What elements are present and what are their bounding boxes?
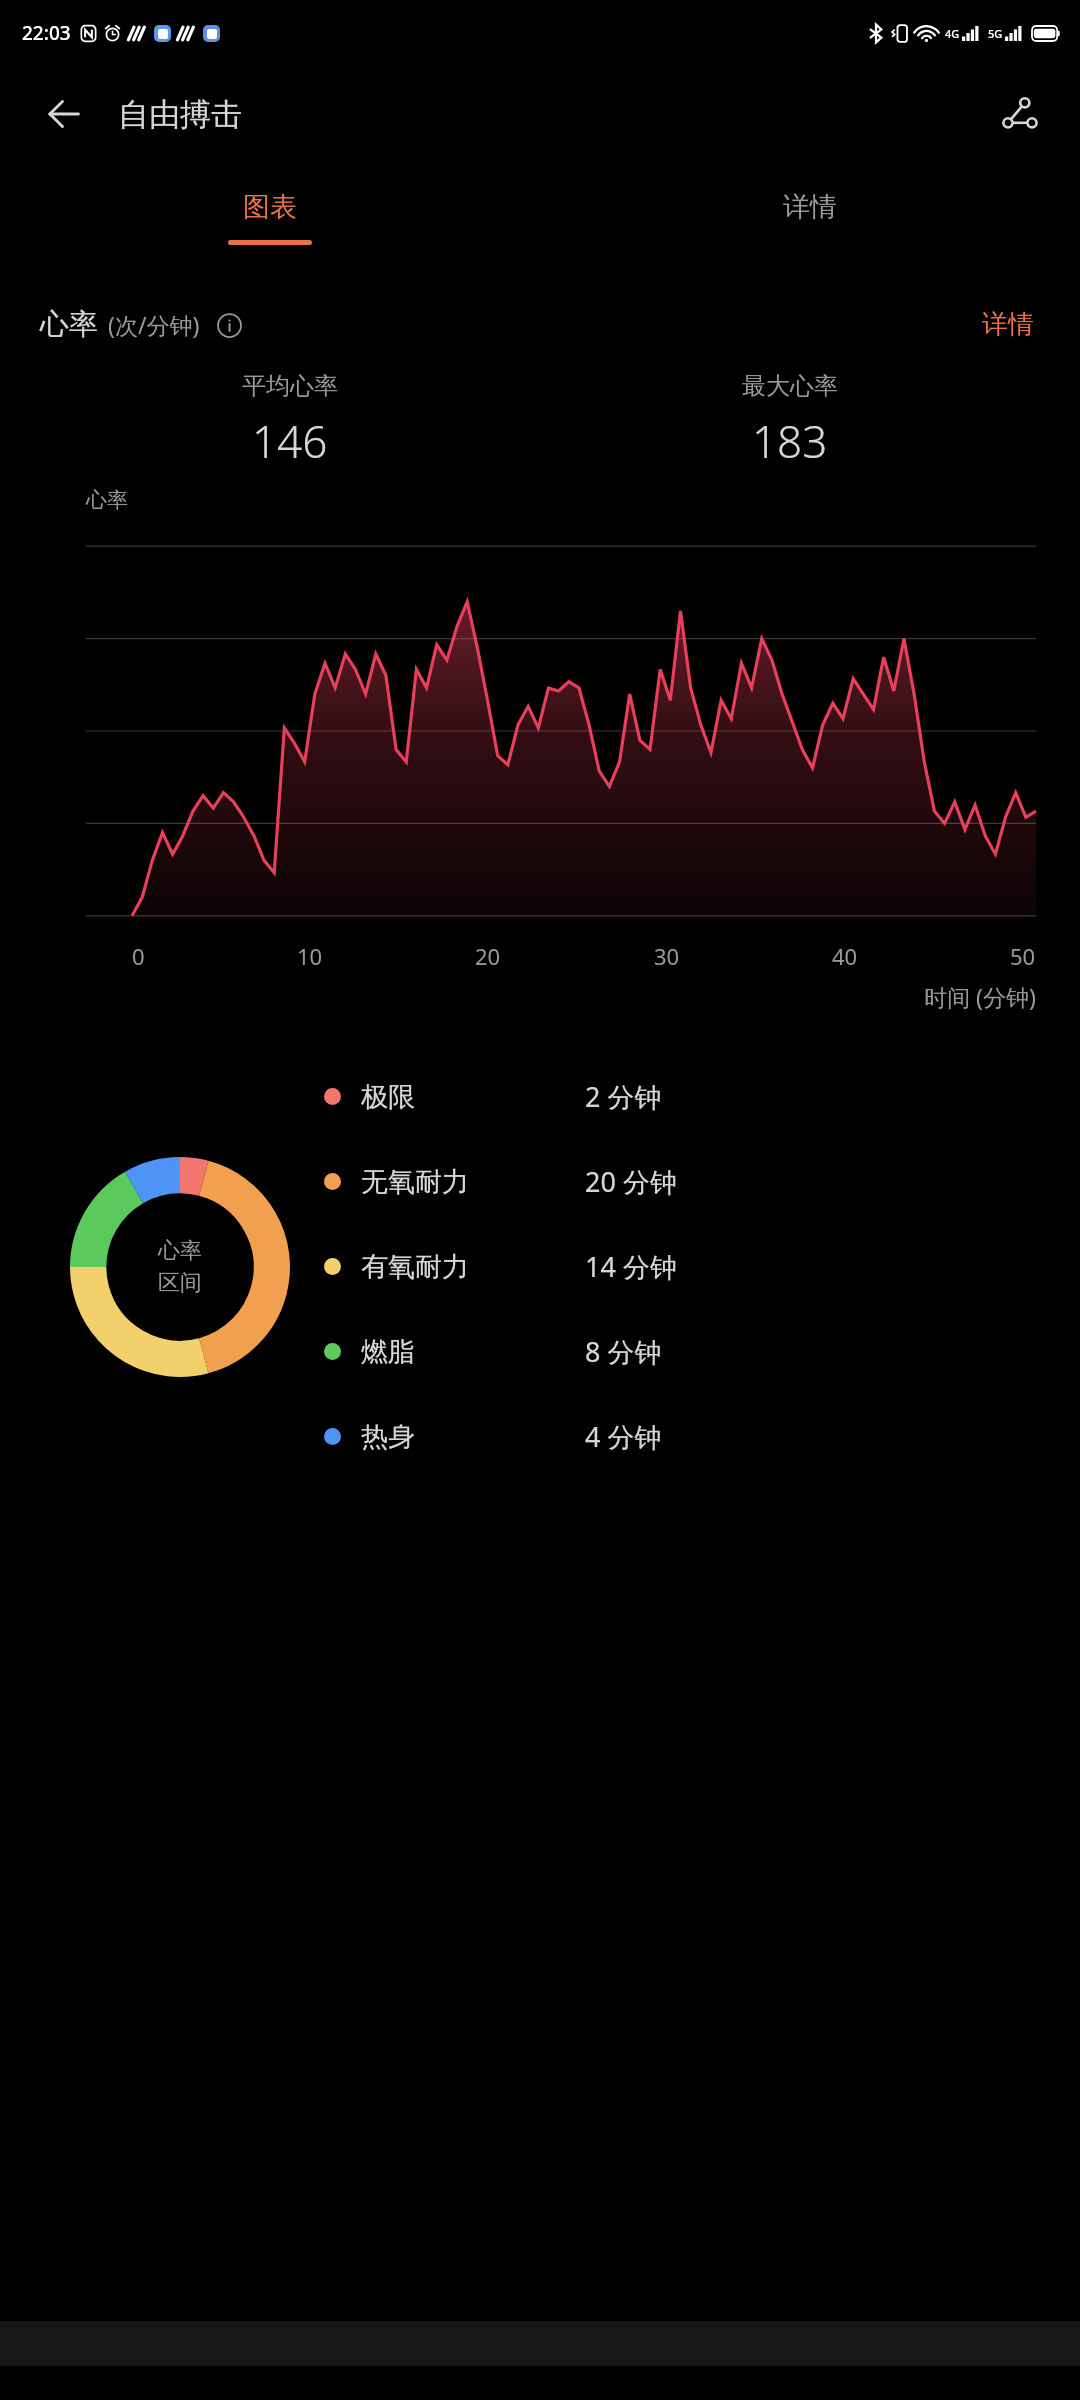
button[interactable]: 有氧耐力 <box>324 1224 1040 1309</box>
button[interactable]: 燃脂 <box>324 1309 1040 1394</box>
staticText: 146 <box>252 411 328 471</box>
staticText: 最大心率 <box>742 371 838 401</box>
button[interactable]: 详情 <box>976 302 1040 347</box>
staticText: (次/分钟) <box>108 309 200 340</box>
staticText: 50 <box>1010 941 1036 971</box>
button[interactable]: 极限 <box>324 1054 1040 1139</box>
staticText: 详情 <box>982 308 1034 341</box>
button[interactable]: 热身 <box>324 1394 1040 1479</box>
button[interactable]: 平均心率 <box>40 371 540 471</box>
staticText: 14 分钟 <box>585 1248 677 1285</box>
staticText: 时间 (分钟) <box>924 981 1036 1012</box>
staticText: 30 <box>654 941 680 971</box>
staticText: 有氧耐力 <box>361 1250 561 1284</box>
staticText: 40 <box>832 941 858 971</box>
staticText: 热身 <box>361 1420 561 1454</box>
staticText: 2 分钟 <box>585 1078 662 1115</box>
staticText: 图表 <box>243 190 297 224</box>
button[interactable]: Heart rate zones <box>70 1157 290 1377</box>
staticText: 4 分钟 <box>585 1418 662 1455</box>
button[interactable]: 详情 <box>743 178 877 257</box>
staticText: 心率 <box>40 306 98 343</box>
button[interactable]: 无氧耐力 <box>324 1139 1040 1224</box>
staticText: 10 <box>297 941 323 971</box>
staticText: 心率 <box>86 487 128 513</box>
staticText: 5G <box>988 26 1003 41</box>
staticText: 183 <box>752 411 828 471</box>
staticText: 4G <box>945 26 960 41</box>
staticText: 0 <box>132 941 145 971</box>
button[interactable]: Info <box>212 308 246 342</box>
staticText: 20 <box>475 941 501 971</box>
staticText: 8 分钟 <box>585 1333 662 1370</box>
button[interactable]: 最大心率 <box>540 371 1040 471</box>
staticText: 20 分钟 <box>585 1163 677 1200</box>
staticText: 燃脂 <box>361 1335 561 1369</box>
staticText: 极限 <box>361 1080 561 1114</box>
staticText: 无氧耐力 <box>361 1165 561 1199</box>
staticText: 详情 <box>783 190 837 224</box>
staticText: 心率 <box>158 1237 202 1265</box>
staticText: 区间 <box>158 1269 202 1297</box>
staticText: 22:03 <box>22 20 71 46</box>
staticText: 平均心率 <box>242 371 338 401</box>
button[interactable]: Share <box>994 88 1046 140</box>
button[interactable]: 图表 <box>188 178 352 257</box>
button[interactable]: Back <box>40 90 88 138</box>
staticText: 自由搏击 <box>118 95 242 134</box>
